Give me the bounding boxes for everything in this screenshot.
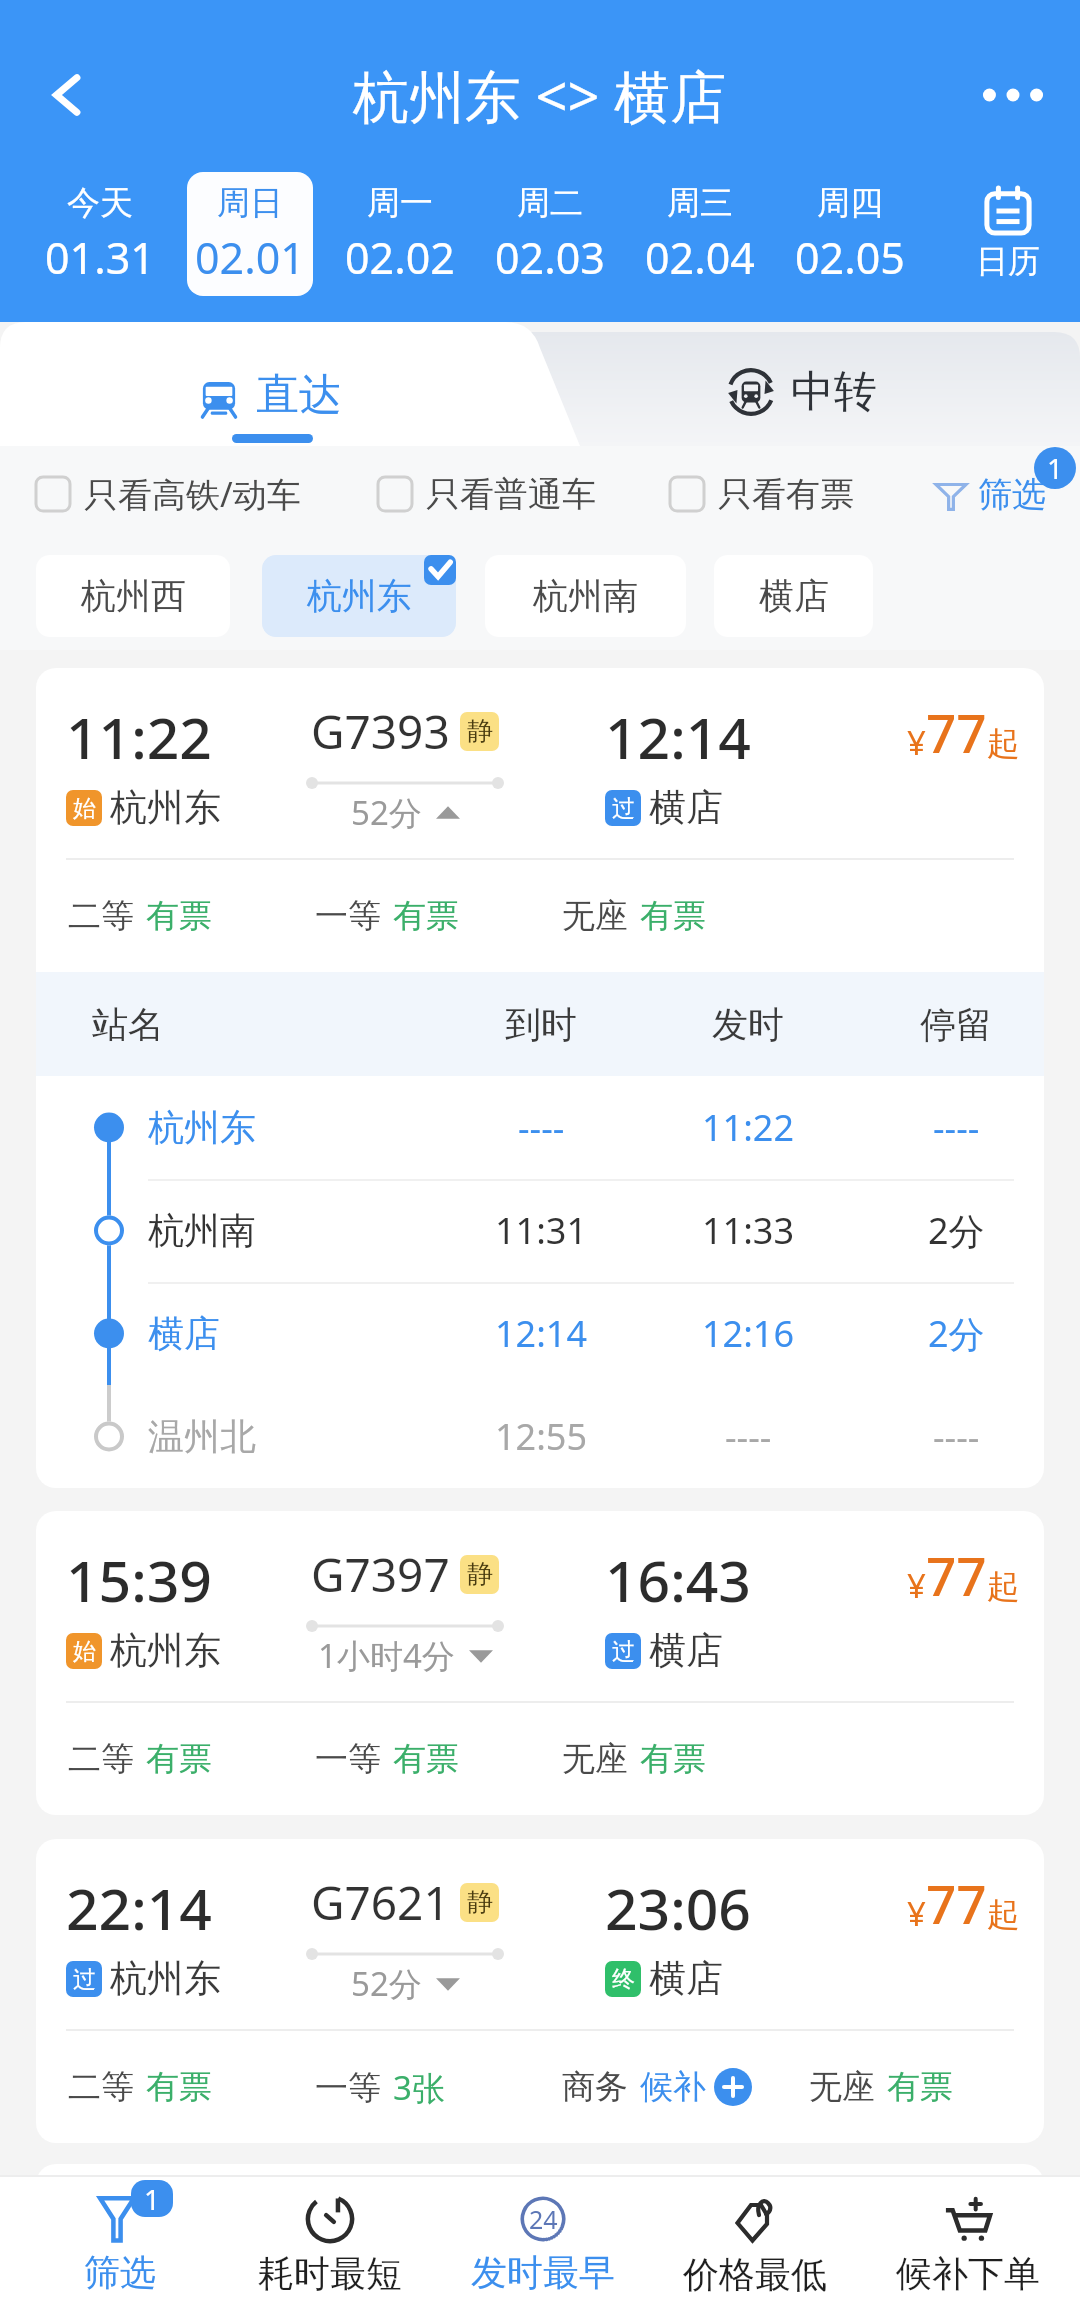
button[interactable]: 中转 [540,322,1080,446]
staticText: 无座 [562,895,628,937]
staticText: 站名 [92,1002,164,1047]
staticText: 周三 [667,182,733,224]
staticText: 只看有票 [718,473,854,516]
staticText: 过 [612,1637,635,1666]
staticText: 静 [467,715,493,748]
staticText: 横店 [148,1311,220,1356]
staticText: 16:43 [605,1541,751,1619]
button[interactable]: 杭州西 [36,555,230,637]
staticText: 杭州东 [307,574,412,618]
staticText: 24 [529,2202,558,2236]
staticText: 有票 [887,2066,953,2108]
button[interactable]: 候补下单 [862,2177,1074,2303]
staticText: 杭州南 [533,574,638,618]
staticText: 日历 [976,241,1040,281]
staticText: ---- [933,1412,980,1461]
staticText: 起 [987,1566,1020,1608]
staticText: 始 [73,794,96,823]
button[interactable]: 22:14 [36,1839,1044,2029]
staticText: 52分 [351,790,422,835]
staticText: G7393 [311,700,450,763]
button[interactable]: 杭州东 [262,555,456,637]
staticText: 02.01 [195,228,305,287]
staticText: ---- [725,1412,772,1461]
staticText: 二等 [68,895,134,937]
staticText: 周二 [517,182,583,224]
staticText: 有票 [146,2066,212,2108]
staticText: 有票 [393,895,459,937]
staticText: 52分 [351,1961,422,2006]
staticText: 11:22 [702,1103,795,1152]
staticText: ¥ [907,1563,926,1608]
staticText: 15:39 [66,1541,212,1619]
button[interactable]: 只看高铁/动车 [36,446,301,542]
button[interactable]: More options [982,64,1044,126]
staticText: 有票 [393,1738,459,1780]
staticText: 77 [926,1539,987,1611]
button[interactable]: 11:22 [36,668,1044,858]
staticText: 停留 [920,1002,992,1047]
staticText: 11:31 [495,1206,588,1255]
staticText: ¥ [907,1891,926,1936]
button[interactable]: 横店 [714,555,873,637]
staticText: 始 [73,1637,96,1666]
staticText: 横店 [759,574,829,618]
staticText: 过 [612,794,635,823]
staticText: 周一 [367,182,433,224]
staticText: 杭州东 [148,1105,256,1150]
staticText: 只看高铁/动车 [84,471,301,517]
staticText: 静 [467,1558,493,1591]
staticText: 01.31 [45,228,155,287]
staticText: 横店 [649,1627,723,1674]
staticText: 1 [144,2180,161,2217]
staticText: 12:16 [702,1309,795,1358]
staticText: 77 [926,696,987,768]
staticText: 发时最早 [471,2250,615,2295]
staticText: 二等 [68,1738,134,1780]
staticText: 一等 [315,1738,381,1780]
staticText: 今天 [67,182,133,224]
button[interactable]: 15:39 [36,1511,1044,1701]
button[interactable]: Back [36,64,98,126]
button[interactable]: 周二 [487,172,613,296]
button[interactable]: 24 [437,2177,649,2303]
staticText: 2分 [928,1309,985,1358]
staticText: 杭州南 [148,1208,256,1253]
staticText: 横店 [649,784,723,831]
button[interactable]: 直达 [0,322,540,446]
staticText: 发时 [712,1002,784,1047]
staticText: 杭州东 [110,784,221,831]
staticText: G7621 [311,1871,450,1934]
button[interactable]: 周四 [787,172,913,296]
button[interactable]: 筛选 [934,446,1046,542]
button[interactable]: 日历 [945,172,1071,296]
staticText: 12:14 [495,1309,588,1358]
button[interactable]: 周日 [187,172,313,296]
button[interactable]: 周三 [637,172,763,296]
staticText: 12:14 [605,698,751,776]
button[interactable]: 只看有票 [670,446,854,542]
button[interactable]: 只看普通车 [378,446,596,542]
staticText: 候补下单 [896,2251,1040,2296]
staticText: 起 [987,1894,1020,1936]
button[interactable]: 价格最低 [649,2177,861,2303]
staticText: 11:22 [66,698,212,776]
button[interactable]: 周一 [337,172,463,296]
staticText: 商务 [562,2066,628,2108]
button[interactable]: 今天 [37,172,163,296]
staticText: 2分 [928,1206,985,1255]
staticText: 温州北 [148,1414,256,1459]
button[interactable]: 杭州南 [485,555,686,637]
staticText: 到时 [505,1002,577,1047]
staticText: ---- [933,1103,980,1152]
staticText: 77 [926,1867,987,1939]
staticText: 有票 [146,1738,212,1780]
staticText: G7397 [311,1543,450,1606]
button[interactable]: 1 [14,2177,226,2303]
staticText: 价格最低 [683,2252,827,2297]
staticText: 02.04 [645,228,755,287]
staticText: 无座 [809,2066,875,2108]
staticText: 3张 [393,2065,445,2110]
staticText: 02.05 [795,228,905,287]
button[interactable]: 耗时最短 [224,2177,436,2303]
